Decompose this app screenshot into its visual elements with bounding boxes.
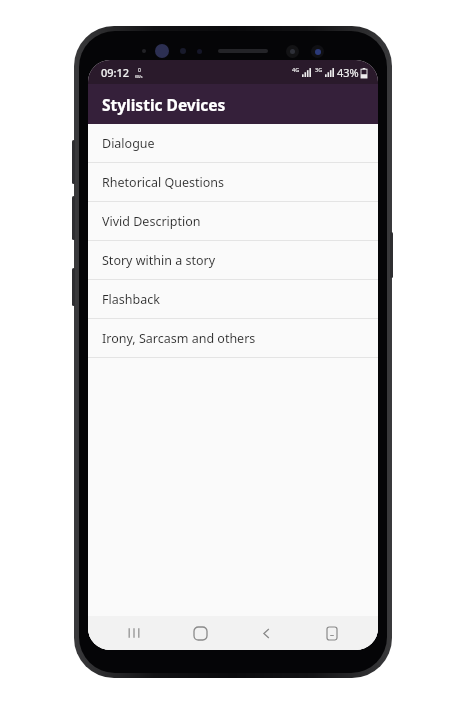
button[interactable]: Recents	[114, 616, 154, 650]
staticText: Irony, Sarcasm and others	[102, 330, 256, 347]
staticText: 4G	[292, 66, 300, 73]
staticText: Flashback	[102, 291, 160, 308]
staticText: 3G	[315, 66, 323, 73]
staticText: 0	[138, 67, 141, 74]
button[interactable]: Vivid Description	[88, 202, 378, 241]
staticText: Stylistic Devices	[102, 94, 226, 115]
staticText: KB/s	[135, 74, 143, 79]
button[interactable]: Rhetorical Questions	[88, 163, 378, 202]
staticText: 09:12	[101, 65, 130, 80]
staticText: Rhetorical Questions	[102, 174, 225, 191]
button[interactable]: Home	[180, 616, 220, 650]
staticText: 43%	[337, 65, 359, 80]
staticText: Dialogue	[102, 135, 155, 152]
button[interactable]: Flashback	[88, 280, 378, 319]
staticText: Story within a story	[102, 252, 216, 269]
button[interactable]: Dialogue	[88, 124, 378, 163]
staticText: Vivid Description	[102, 213, 201, 230]
button[interactable]: Story within a story	[88, 241, 378, 280]
button[interactable]: Irony, Sarcasm and others	[88, 319, 378, 358]
button[interactable]: Back	[246, 616, 286, 650]
button[interactable]: Hide keyboard	[312, 616, 352, 650]
